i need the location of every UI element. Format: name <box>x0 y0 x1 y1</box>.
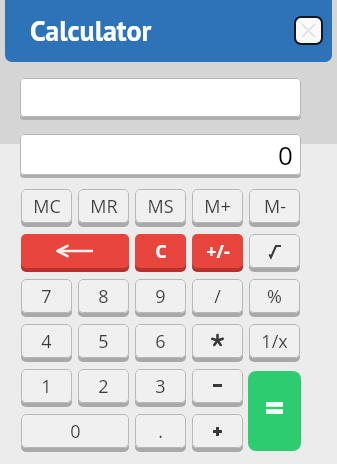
button[interactable]: 7 <box>21 279 72 313</box>
staticText: 0 <box>70 419 81 444</box>
button[interactable]: MR <box>78 189 129 223</box>
button[interactable]: Close <box>296 18 321 43</box>
button[interactable]: MS <box>135 189 186 223</box>
button[interactable]: +/- <box>192 234 243 268</box>
staticText: M+ <box>204 194 231 219</box>
button[interactable] <box>192 414 243 448</box>
button[interactable]: 4 <box>21 324 72 358</box>
button[interactable]: M- <box>249 189 300 223</box>
staticText: . <box>158 419 163 444</box>
button[interactable]: % <box>249 279 300 313</box>
button[interactable] <box>192 369 243 403</box>
staticText: / <box>214 284 221 309</box>
button[interactable]: 3 <box>135 369 186 403</box>
staticText: 9 <box>155 284 166 309</box>
button[interactable]: 9 <box>135 279 186 313</box>
staticText: C <box>155 239 167 264</box>
button[interactable]: 0 <box>21 414 129 448</box>
button[interactable] <box>192 324 243 358</box>
button[interactable]: 1/x <box>249 324 300 358</box>
button[interactable]: 5 <box>78 324 129 358</box>
staticText: 7 <box>41 284 52 309</box>
staticText: 0 <box>278 137 293 172</box>
button[interactable]: M+ <box>192 189 243 223</box>
staticText: MR <box>90 194 118 219</box>
staticText: +/- <box>206 239 230 264</box>
button[interactable]: 8 <box>78 279 129 313</box>
staticText: 4 <box>41 329 52 354</box>
button[interactable]: Equals <box>248 371 301 451</box>
staticText: Calculator <box>30 12 152 48</box>
button[interactable]: MC <box>21 189 72 223</box>
staticText: M- <box>264 194 286 219</box>
staticText: % <box>267 284 282 309</box>
button[interactable]: 1 <box>21 369 72 403</box>
staticText: 3 <box>155 374 166 399</box>
staticText: 1/x <box>261 329 288 354</box>
button[interactable]: 6 <box>135 324 186 358</box>
staticText: 6 <box>155 329 166 354</box>
staticText: MS <box>147 194 174 219</box>
button[interactable]: . <box>135 414 186 448</box>
button[interactable]: / <box>192 279 243 313</box>
staticText: 5 <box>98 329 109 354</box>
staticText: 1 <box>41 374 52 399</box>
button[interactable]: Backspace <box>21 234 129 268</box>
staticText: 8 <box>98 284 109 309</box>
button[interactable]: 2 <box>78 369 129 403</box>
button[interactable] <box>249 234 300 268</box>
staticText: MC <box>33 194 61 219</box>
button[interactable]: C <box>135 234 186 268</box>
staticText: 2 <box>98 374 109 399</box>
